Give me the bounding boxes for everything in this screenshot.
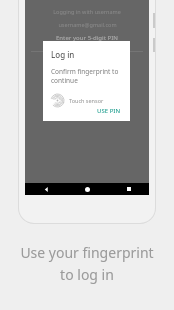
staticText: USE PIN (97, 107, 121, 115)
staticText: Enter your 5-digit PIN (56, 34, 118, 42)
button[interactable]: USE PIN (97, 107, 123, 121)
button[interactable]: Back (25, 183, 67, 195)
staticText: Confirm fingerprint to continue (51, 67, 123, 85)
staticText: to log in (60, 265, 114, 284)
staticText: Log in (51, 49, 75, 60)
button[interactable]: Recents (108, 183, 149, 195)
staticText: Logging in with username (53, 8, 121, 15)
staticText: Touch sensor (69, 97, 104, 104)
button[interactable]: Home (67, 183, 108, 195)
staticText: Use your fingerprint (20, 243, 154, 262)
staticText: username@gmail.com (58, 21, 117, 28)
